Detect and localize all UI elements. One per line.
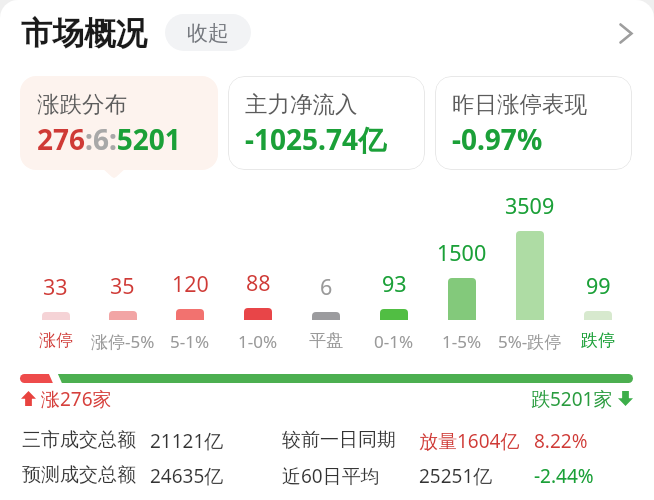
staticText: 93	[382, 269, 407, 294]
button[interactable]: 主力净流入	[228, 76, 425, 170]
staticText: 21121亿	[150, 428, 224, 452]
staticText: 放量1604亿	[419, 428, 520, 452]
staticText: -1025.74亿	[245, 120, 386, 158]
button[interactable]: 涨跌分布	[20, 76, 218, 170]
staticText: 6	[320, 272, 333, 297]
staticText: 平盘	[309, 330, 343, 351]
staticText: 近60日平均	[282, 463, 380, 487]
staticText: 预测成交总额	[22, 463, 136, 487]
staticText: 88	[246, 268, 271, 293]
staticText: 24635亿	[150, 463, 224, 487]
staticText: 120	[172, 269, 209, 294]
staticText: 5-1%	[170, 330, 210, 353]
staticText: 3509	[505, 191, 555, 216]
button[interactable]: 市场概况	[21, 14, 147, 54]
staticText: 276:6:5201	[37, 120, 181, 158]
staticText: 主力净流入	[245, 90, 358, 118]
staticText: 涨跌分布	[37, 90, 127, 118]
staticText: 0-1%	[374, 330, 414, 353]
staticText: 33	[43, 272, 68, 297]
staticText: 涨停-5%	[91, 330, 155, 353]
staticText: 1500	[437, 238, 487, 263]
staticText: 收起	[187, 20, 229, 46]
button[interactable]: More market overview	[609, 16, 643, 50]
staticText: 35	[110, 271, 135, 296]
button[interactable]: 昨日涨停表现	[435, 76, 632, 170]
staticText: 涨停	[39, 330, 73, 351]
staticText: -2.44%	[534, 463, 594, 487]
staticText: 1-5%	[442, 330, 482, 353]
staticText: 5%-跌停	[498, 330, 562, 353]
staticText: 跌停	[581, 330, 615, 351]
staticText: 跌5201家	[531, 386, 613, 410]
staticText: 较前一日同期	[282, 428, 396, 452]
button[interactable]: 收起	[165, 14, 251, 51]
staticText: 涨276家	[41, 386, 112, 410]
staticText: 25251亿	[419, 463, 493, 487]
staticText: 8.22%	[534, 428, 588, 452]
staticText: 三市成交总额	[22, 428, 136, 452]
staticText: 1-0%	[238, 330, 278, 353]
staticText: 市场概况	[21, 14, 147, 54]
staticText: 昨日涨停表现	[452, 90, 587, 118]
staticText: -0.97%	[452, 120, 543, 158]
staticText: 99	[586, 271, 611, 296]
